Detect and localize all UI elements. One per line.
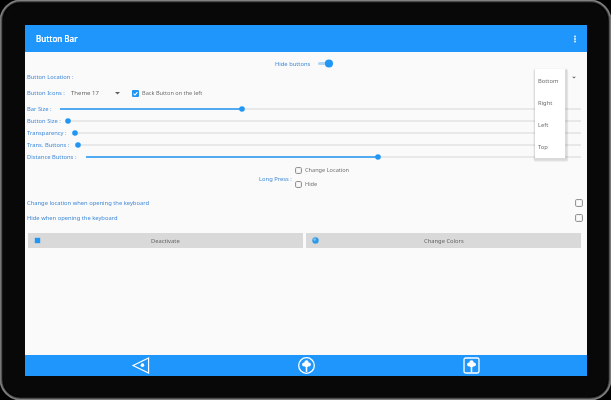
button[interactable]: Trans. Buttons : xyxy=(25,139,587,151)
button[interactable]: Recents xyxy=(460,355,482,375)
staticText: Deactivate xyxy=(151,237,180,245)
staticText: Bar Size : xyxy=(27,105,52,113)
button[interactable]: More options xyxy=(566,30,584,48)
button[interactable]: Change Colors xyxy=(306,233,581,248)
button[interactable]: Change Location xyxy=(295,166,350,174)
staticText: Button Size : xyxy=(27,117,61,125)
staticText: Hide xyxy=(305,180,318,188)
staticText: Change location when opening the keyboar… xyxy=(27,199,150,207)
staticText: Back Button on the left xyxy=(142,89,203,97)
button[interactable]: Left xyxy=(535,114,565,136)
button[interactable]: Top xyxy=(535,136,565,158)
button[interactable]: Theme 17 xyxy=(71,87,120,99)
staticText: Hide buttons xyxy=(275,60,311,68)
staticText: Button Bar xyxy=(36,33,78,44)
button[interactable]: Back xyxy=(130,355,152,375)
button[interactable]: Hide xyxy=(295,180,318,188)
staticText: Right xyxy=(538,99,553,107)
button[interactable]: Button Bar xyxy=(25,25,587,52)
staticText: Change Colors xyxy=(424,237,464,245)
button[interactable]: Bar Size : xyxy=(25,103,587,115)
button[interactable]: Button Size : xyxy=(25,115,587,127)
button[interactable]: Deactivate xyxy=(28,233,303,248)
button[interactable]: Distance Buttons : xyxy=(25,151,587,163)
button[interactable]: Hide when opening the keyboard xyxy=(27,213,583,223)
staticText: Button Location : xyxy=(27,73,74,81)
button[interactable]: Bottom xyxy=(535,69,565,92)
staticText: Bottom xyxy=(538,77,559,85)
staticText: Long Press : xyxy=(259,175,292,183)
button[interactable]: Back Button on the left xyxy=(132,87,203,99)
staticText: Transparency : xyxy=(27,129,67,137)
staticText: Left xyxy=(538,121,549,129)
staticText: Hide when opening the keyboard xyxy=(27,214,118,222)
staticText: Change Location xyxy=(305,166,350,174)
staticText: Top xyxy=(538,143,548,151)
staticText: Theme 17 xyxy=(71,89,99,97)
button[interactable]: Change location when opening the keyboar… xyxy=(27,198,583,208)
button[interactable]: Right xyxy=(535,92,565,114)
button[interactable]: Hide buttons xyxy=(275,58,333,69)
staticText: Distance Buttons : xyxy=(27,153,77,161)
staticText: Trans. Buttons : xyxy=(27,141,70,149)
button[interactable]: Transparency : xyxy=(25,127,587,139)
staticText: Button Icons : xyxy=(27,89,65,97)
button[interactable]: Home xyxy=(295,355,317,375)
